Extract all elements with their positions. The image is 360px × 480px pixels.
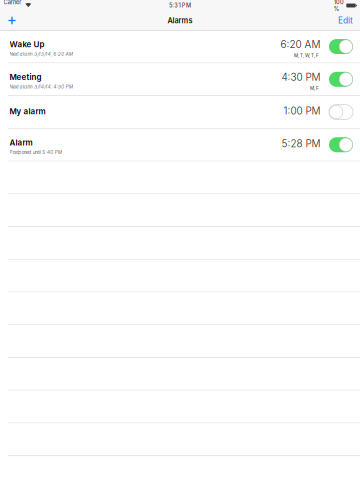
staticText: Edit <box>338 15 353 25</box>
staticText: My alarm <box>9 106 45 116</box>
button[interactable]: Edit <box>323 11 353 30</box>
button[interactable]: Add alarm <box>3 11 21 30</box>
button[interactable]: My alarm <box>0 96 360 129</box>
staticText: Carrier <box>4 0 21 12</box>
button[interactable]: Meeting <box>0 63 360 96</box>
staticText: M, T, W, T, F <box>294 53 319 58</box>
staticText: 4:30 PM <box>281 71 320 83</box>
staticText: 5:28 PM <box>281 137 320 150</box>
staticText: 5:31 PM <box>169 2 191 9</box>
staticText: Next alarm 3/14/14, 4:30 PM <box>9 84 73 90</box>
staticText: 100% <box>334 0 344 12</box>
staticText: Meeting <box>9 72 41 82</box>
staticText: Next alarm 3/13/14, 6:20 AM <box>9 51 73 57</box>
button[interactable]: Alarm <box>0 129 360 161</box>
staticText: M, F <box>310 85 319 91</box>
staticText: Wake Up <box>9 39 44 49</box>
staticText: 1:00 PM <box>283 105 320 117</box>
staticText: 6:20 AM <box>280 38 320 50</box>
staticText: Alarm <box>9 138 32 147</box>
staticText: Postponed until 5:40 PM <box>9 150 62 155</box>
button[interactable]: Wake Up <box>0 31 360 63</box>
staticText: Alarms <box>167 16 192 25</box>
